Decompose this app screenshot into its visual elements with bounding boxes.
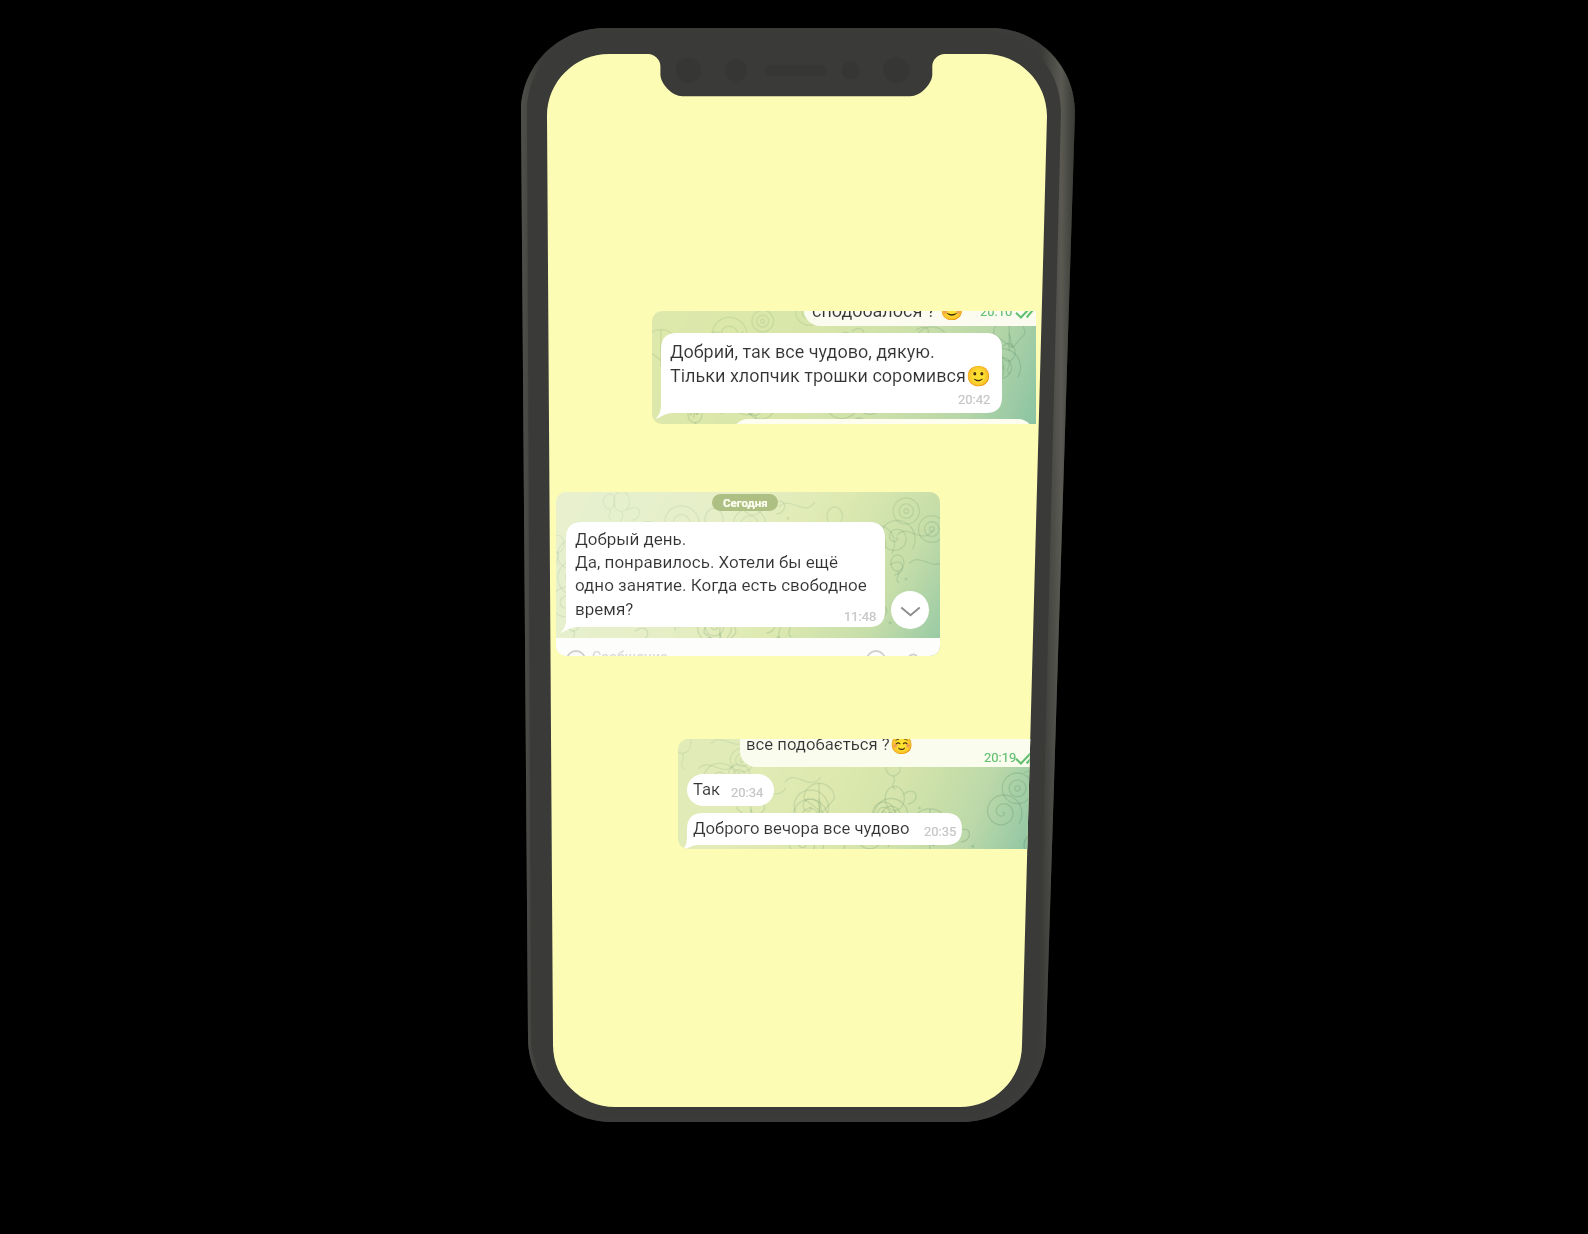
staticText: 🙂 [966,364,991,387]
button[interactable] [687,774,774,806]
button[interactable]: Сообщение [556,638,940,656]
staticText: 20:34 [731,785,764,800]
staticText: Да, понравилось. Хотели бы ещё [575,552,838,572]
staticText: Тільки хлопчик трошки соромився [670,365,966,386]
button[interactable] [804,311,1036,326]
staticText: 20:19 [984,750,1017,765]
staticText: Так [693,780,721,800]
button[interactable] [732,419,1034,424]
staticText: 20:42 [958,392,991,407]
staticText: время? [575,599,634,619]
staticText: Доброго вечора все чудово [693,819,910,839]
staticText: 😊 [940,311,964,321]
button[interactable]: Scroll to bottom [891,591,929,629]
staticText: 11:48 [844,609,877,624]
staticText: 20:10 [980,311,1013,319]
staticText: одно занятие. Когда есть свободное [575,575,867,595]
staticText: Добрый день. [575,529,687,549]
staticText: все подобається ? [746,739,890,755]
button[interactable]: Сегодня [712,494,778,511]
staticText: ☺️ [890,739,914,756]
button[interactable] [566,522,885,627]
staticText: 20:35 [924,824,957,839]
button[interactable] [687,813,962,845]
button[interactable] [661,333,1002,413]
staticText: сподобалося ? [812,311,936,321]
staticText: Сегодня [723,496,768,509]
button[interactable] [740,739,1037,767]
staticText: Сообщение [592,649,668,656]
staticText: Добрий, так все чудово, дякую. [670,341,935,362]
